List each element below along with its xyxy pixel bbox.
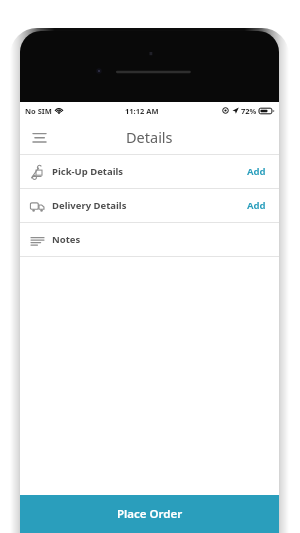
staticText: 72% [241, 106, 257, 116]
staticText: Notes [52, 233, 81, 246]
staticText: Pick-Up Details [52, 165, 124, 178]
button[interactable]: Delivery Details [20, 189, 279, 222]
button[interactable]: Add [244, 195, 269, 216]
staticText: Add [247, 165, 266, 178]
staticText: Place Order [117, 506, 183, 522]
button[interactable]: Pick-Up Details [20, 155, 279, 188]
button[interactable]: Menu [27, 125, 51, 149]
staticText: 11:12 AM [125, 106, 159, 116]
staticText: Details [126, 127, 173, 147]
button[interactable]: Add [244, 161, 269, 182]
staticText: No SIM [25, 106, 52, 116]
staticText: Delivery Details [52, 199, 127, 212]
button[interactable]: Place Order [20, 495, 279, 533]
staticText: Add [247, 199, 266, 212]
button[interactable]: Notes [20, 223, 279, 256]
